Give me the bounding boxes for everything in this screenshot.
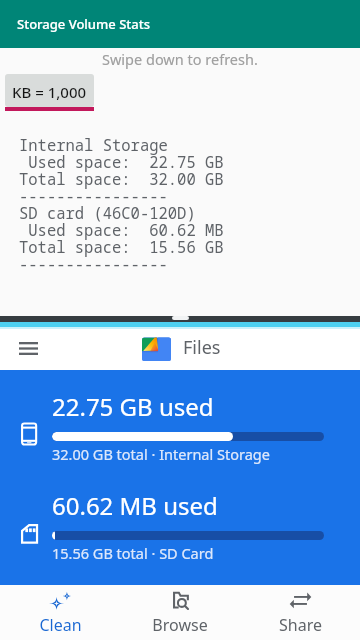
staticText: KB = 1,000 (12, 82, 87, 102)
staticText: 32.00 GB total · Internal Storage (52, 444, 270, 464)
button[interactable]: Browse (120, 585, 240, 640)
staticText: Files (183, 335, 221, 360)
staticText: Storage Volume Stats (17, 15, 151, 33)
staticText: 60.62 MB used (52, 489, 218, 522)
staticText: Clean (39, 614, 82, 636)
button[interactable]: KB = 1,000 (5, 74, 94, 107)
button[interactable]: 22.75 GB used (0, 390, 360, 476)
staticText: Internal Storage Used space: 22.75 GB To… (19, 137, 224, 273)
button[interactable]: Share (240, 585, 360, 640)
button[interactable]: Menu (10, 330, 46, 366)
button[interactable]: Storage Volume Stats (0, 0, 360, 48)
staticText: Browse (152, 614, 208, 636)
staticText: Share (279, 614, 322, 636)
staticText: Swipe down to refresh. (102, 49, 258, 69)
button[interactable]: 60.62 MB used (0, 489, 360, 575)
button[interactable]: Clean (0, 585, 120, 640)
staticText: 22.75 GB used (52, 390, 214, 423)
staticText: 15.56 GB total · SD Card (52, 543, 214, 563)
